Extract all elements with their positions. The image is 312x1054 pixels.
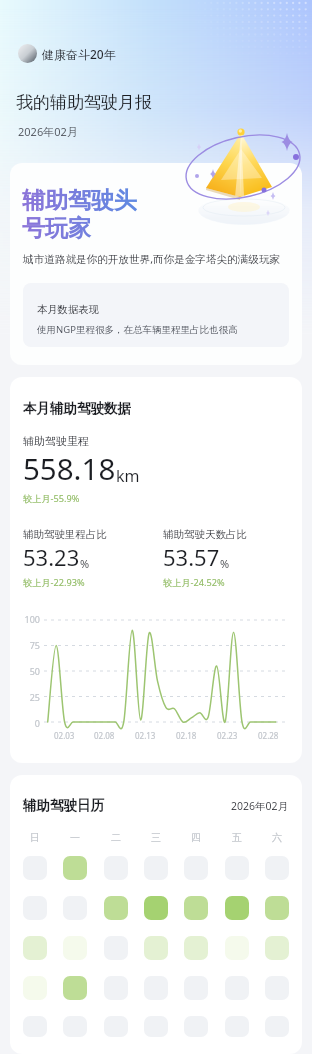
button[interactable]: Profile avatar	[18, 44, 37, 63]
button[interactable]: Day cell	[265, 936, 289, 960]
staticText: 100	[23, 613, 40, 625]
button[interactable]: Day cell	[23, 856, 47, 880]
staticText: 53.57	[163, 542, 220, 572]
staticText: %	[80, 556, 90, 571]
staticText: 50	[23, 665, 40, 677]
staticText: 02.18	[176, 730, 197, 741]
staticText: 02.28	[258, 730, 279, 741]
button[interactable]: Day cell	[184, 976, 208, 1000]
staticText: km	[116, 465, 140, 487]
staticText: 2026年02月	[231, 799, 289, 813]
staticText: 02.03	[54, 730, 75, 741]
staticText: 四	[191, 831, 201, 844]
button[interactable]: Day cell	[23, 896, 47, 920]
button[interactable]: Day cell	[265, 976, 289, 1000]
button[interactable]: Day cell	[23, 976, 47, 1000]
button[interactable]: Day cell	[184, 896, 208, 920]
button[interactable]: Day cell	[144, 976, 168, 1000]
staticText: 辅助驾驶头 号玩家	[22, 186, 137, 243]
staticText: 558.18	[23, 448, 116, 488]
button[interactable]: Day cell	[144, 936, 168, 960]
staticText: 53.23	[23, 542, 80, 572]
button[interactable]: Day cell	[184, 856, 208, 880]
staticText: 25	[23, 691, 40, 703]
button[interactable]: 本月辅助驾驶数据	[10, 377, 302, 763]
staticText: 本月辅助驾驶数据	[23, 400, 131, 417]
staticText: 较上月-24.52%	[163, 576, 225, 589]
button[interactable]: Day cell	[23, 1016, 47, 1037]
staticText: 三	[151, 831, 161, 844]
staticText: 辅助驾驶日历	[23, 797, 104, 814]
button[interactable]: Day cell	[184, 1016, 208, 1037]
button[interactable]: Day cell	[144, 856, 168, 880]
staticText: 辅助驾驶天数占比	[163, 528, 247, 541]
button[interactable]: Day cell	[225, 856, 249, 880]
button[interactable]: Day cell	[225, 896, 249, 920]
staticText: 城市道路就是你的开放世界,而你是金字塔尖的满级玩家	[23, 252, 281, 266]
button[interactable]: 辅助驾驶头 号玩家	[10, 163, 302, 365]
staticText: %	[220, 556, 230, 571]
staticText: 我的辅助驾驶月报	[16, 92, 152, 113]
button[interactable]: Day cell	[225, 976, 249, 1000]
button[interactable]: Day cell	[184, 936, 208, 960]
staticText: 使用NGP里程很多，在总车辆里程里占比也很高	[37, 323, 238, 336]
staticText: 02.13	[135, 730, 156, 741]
staticText: 一	[70, 831, 80, 844]
button[interactable]: Day cell	[265, 896, 289, 920]
button[interactable]: Day cell	[63, 896, 87, 920]
button[interactable]: Day cell	[265, 856, 289, 880]
staticText: 五	[232, 831, 242, 844]
button[interactable]: Day cell	[23, 936, 47, 960]
staticText: 较上月-55.9%	[23, 492, 80, 505]
staticText: 2026年02月	[18, 124, 78, 139]
staticText: 健康奋斗20年	[42, 46, 116, 62]
staticText: 辅助驾驶里程	[23, 434, 89, 448]
button[interactable]: Day cell	[265, 1016, 289, 1037]
button[interactable]: Day cell	[225, 1016, 249, 1037]
button[interactable]: Day cell	[63, 856, 87, 880]
staticText: 本月数据表现	[37, 303, 99, 316]
staticText: 0	[23, 717, 40, 729]
button[interactable]: Day cell	[104, 1016, 128, 1037]
staticText: 02.08	[94, 730, 115, 741]
staticText: 75	[23, 639, 40, 651]
button[interactable]: Day cell	[104, 896, 128, 920]
button[interactable]: Day cell	[63, 976, 87, 1000]
staticText: 六	[272, 831, 282, 844]
button[interactable]: Day cell	[144, 1016, 168, 1037]
staticText: 02.23	[217, 730, 238, 741]
staticText: 二	[111, 831, 121, 844]
button[interactable]: Day cell	[144, 896, 168, 920]
button[interactable]: Day cell	[104, 856, 128, 880]
button[interactable]: Day cell	[63, 936, 87, 960]
button[interactable]: 辅助驾驶日历	[10, 775, 302, 1054]
staticText: 辅助驾驶里程占比	[23, 528, 107, 541]
button[interactable]: Day cell	[104, 936, 128, 960]
staticText: 较上月-22.93%	[23, 576, 85, 589]
button[interactable]: Day cell	[63, 1016, 87, 1037]
button[interactable]: Day cell	[104, 976, 128, 1000]
staticText: 日	[30, 831, 40, 844]
button[interactable]: Day cell	[225, 936, 249, 960]
